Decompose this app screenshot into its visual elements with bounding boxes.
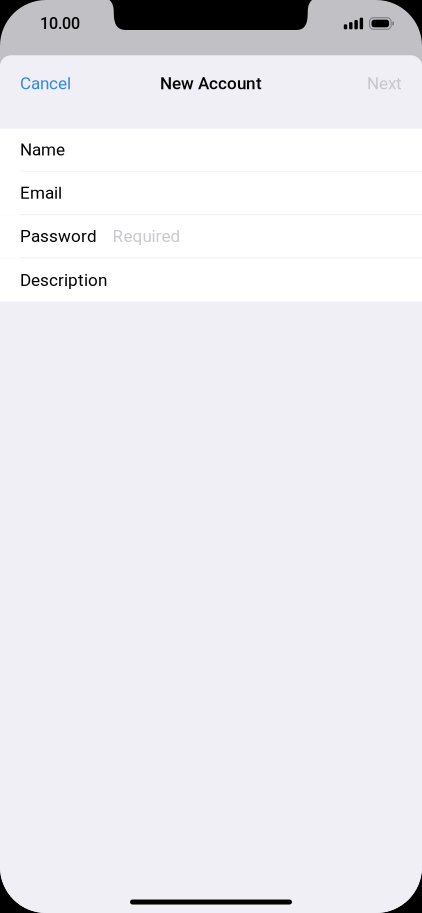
staticText: Description xyxy=(20,270,107,290)
button[interactable]: Description xyxy=(0,258,422,302)
staticText: Required xyxy=(112,226,180,246)
button[interactable]: Email xyxy=(0,172,422,215)
staticText: 10.00 xyxy=(40,14,80,33)
button[interactable]: Name xyxy=(0,128,422,172)
staticText: Cancel xyxy=(20,73,71,93)
staticText: New Account xyxy=(160,73,262,93)
staticText: Email xyxy=(20,183,62,203)
staticText: Next xyxy=(367,73,402,93)
button[interactable]: Cancel xyxy=(0,61,91,105)
staticText: Name xyxy=(20,140,65,160)
staticText: Password xyxy=(20,226,97,246)
button[interactable]: Next xyxy=(347,61,422,105)
button[interactable]: Password xyxy=(0,215,422,258)
